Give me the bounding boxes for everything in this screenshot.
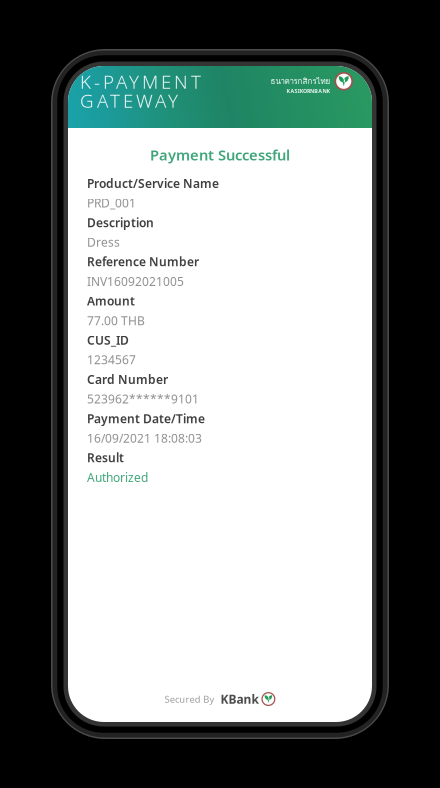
staticText: Amount: [87, 293, 135, 309]
staticText: Product/Service Name: [87, 175, 219, 191]
staticText: Result: [87, 450, 124, 466]
staticText: ธนาคารกสิกรไทย: [270, 75, 330, 87]
staticText: 523962******9101: [87, 391, 199, 407]
staticText: 1234567: [87, 352, 136, 368]
staticText: KASIKORNBANK: [286, 87, 330, 94]
staticText: INV16092021005: [87, 273, 184, 289]
staticText: Dress: [87, 234, 120, 250]
staticText: PRD_001: [87, 195, 136, 211]
staticText: CUS_ID: [87, 332, 129, 348]
staticText: 77.00 THB: [87, 312, 145, 328]
staticText: Payment Date/Time: [87, 410, 205, 426]
staticText: Payment Successful: [150, 145, 290, 164]
staticText: Card Number: [87, 371, 168, 387]
staticText: 16/09/2021 18:08:03: [87, 430, 202, 446]
staticText: Authorized: [87, 469, 148, 485]
staticText: GATEWAY: [80, 88, 178, 113]
staticText: Reference Number: [87, 254, 199, 270]
staticText: K-PAYMENT: [80, 69, 201, 94]
staticText: Secured By: [165, 693, 214, 705]
staticText: Description: [87, 214, 154, 230]
staticText: KBank: [220, 691, 258, 707]
